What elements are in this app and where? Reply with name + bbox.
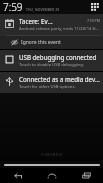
button[interactable]: Quick settings [90,2,100,12]
button[interactable]: Home [35,168,69,183]
staticText: Connected as a media device [19,75,100,83]
staticText: Touch to disable USB debugging. [19,62,84,68]
staticText: Android release party, ends 11/20/14 8:3… [19,26,100,32]
button[interactable]: Recent apps [69,168,103,183]
button[interactable]: Connected as a media device [0,72,103,93]
button[interactable]: Ignore this event [0,36,103,49]
button[interactable] [0,161,103,168]
staticText: T-MOBILE [41,152,63,157]
staticText: THU, NOVEMBER 20 [26,7,60,12]
staticText: 7:59 [3,0,23,14]
staticText: Touch for other USB options. [19,84,76,90]
button[interactable]: USB debugging connected [0,50,103,71]
button[interactable]: Back [0,168,35,183]
button[interactable]: Tacere: Event active [0,14,103,49]
staticText: USB debugging connected [19,53,97,61]
staticText: Ignore this event [21,39,61,46]
staticText: 7:59 PM [87,18,100,23]
staticText: Tacere: Event active [19,17,53,25]
